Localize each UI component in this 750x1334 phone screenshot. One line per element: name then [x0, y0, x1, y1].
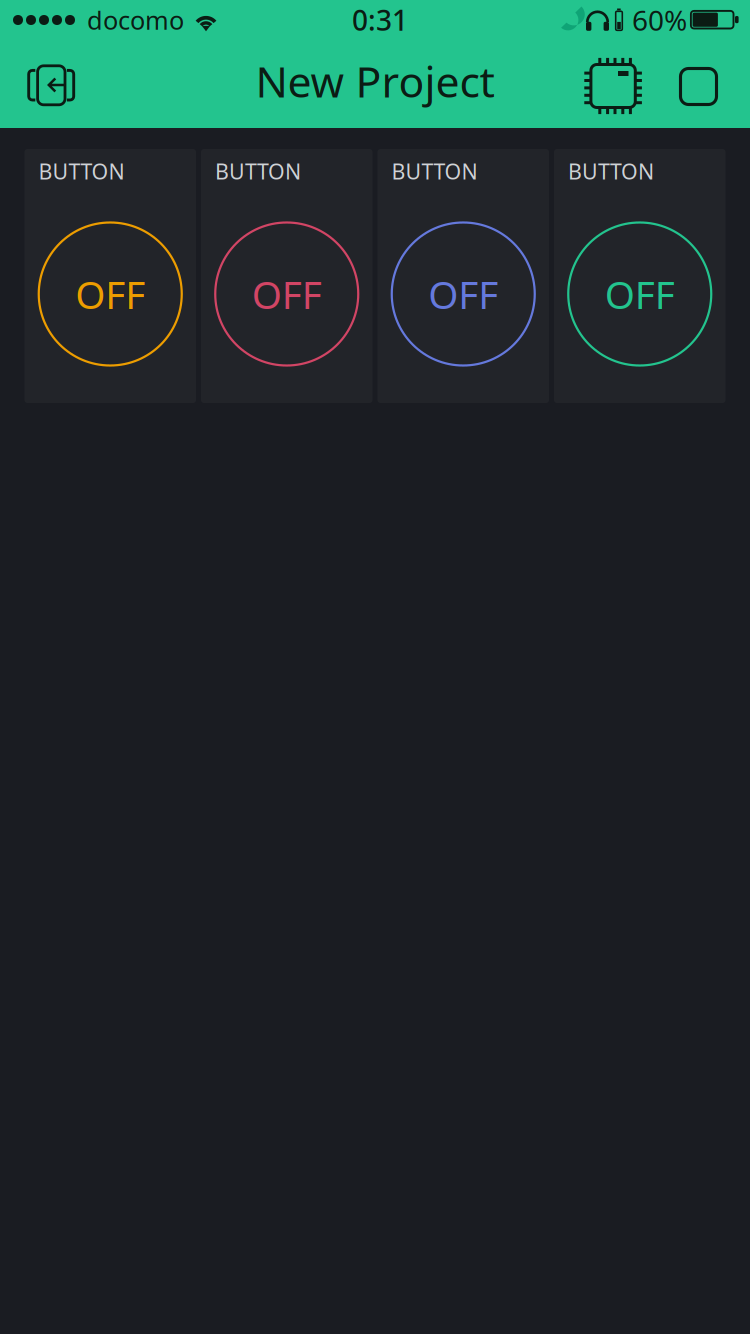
staticText: New Project: [255, 53, 494, 109]
staticText: OFF: [75, 268, 145, 320]
staticText: OFF: [428, 268, 498, 320]
staticText: 60%: [632, 1, 687, 39]
staticText: BUTTON: [215, 157, 301, 185]
staticText: OFF: [252, 268, 322, 320]
staticText: BUTTON: [568, 157, 654, 185]
staticText: BUTTON: [391, 157, 477, 185]
button[interactable]: BUTTON: [201, 149, 372, 403]
staticText: OFF: [605, 268, 675, 320]
staticText: 0:31: [352, 1, 408, 39]
button[interactable]: Device settings: [577, 40, 648, 128]
staticText: docomo: [87, 3, 184, 37]
button[interactable]: Back to projects: [0, 40, 103, 128]
button[interactable]: BUTTON: [377, 149, 549, 403]
button[interactable]: BUTTON: [24, 149, 196, 403]
staticText: BUTTON: [38, 157, 124, 185]
button[interactable]: Stop: [648, 40, 750, 128]
button[interactable]: BUTTON: [554, 149, 725, 403]
